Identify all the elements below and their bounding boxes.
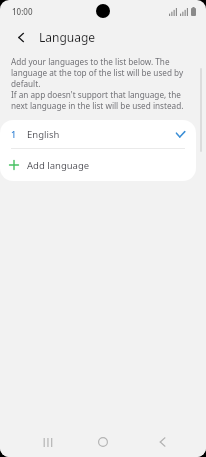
button[interactable]: Back bbox=[151, 427, 173, 457]
staticText: 1 bbox=[11, 128, 17, 140]
staticText: Add language bbox=[27, 159, 90, 172]
button[interactable]: Home bbox=[90, 427, 116, 457]
staticText: 10:00 bbox=[12, 6, 33, 17]
button[interactable]: Back bbox=[10, 26, 32, 48]
staticText: If an app doesn't support that language,… bbox=[11, 89, 190, 111]
staticText: English bbox=[27, 128, 60, 141]
staticText: Add your languages to the list below. Th… bbox=[11, 56, 190, 89]
button[interactable]: 1 bbox=[0, 120, 196, 148]
button[interactable]: Add language bbox=[0, 149, 196, 181]
staticText: Language bbox=[39, 29, 96, 45]
button[interactable]: Recents bbox=[36, 427, 58, 457]
